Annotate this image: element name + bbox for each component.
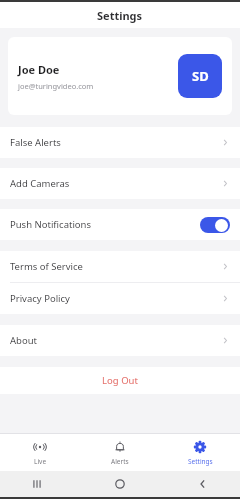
other: Recents (30, 477, 44, 491)
staticText: Alerts (111, 457, 129, 466)
staticText: SD (192, 67, 209, 85)
staticText: About (10, 334, 221, 347)
staticText: Terms of Service (10, 260, 221, 273)
other: Back (196, 477, 210, 491)
staticText: False Alerts (10, 136, 221, 149)
button[interactable]: Joe Doe (8, 37, 232, 115)
staticText: Joe Doe (18, 62, 60, 77)
button[interactable]: Log Out (0, 367, 240, 394)
button[interactable]: About (0, 325, 240, 356)
button[interactable]: False Alerts (0, 127, 240, 158)
button[interactable]: Push Notifications (0, 209, 240, 240)
other: Home (113, 477, 127, 491)
staticText: Settings (188, 457, 213, 466)
button[interactable]: Terms of Service (0, 251, 240, 282)
button[interactable]: Live (0, 434, 80, 471)
button[interactable]: Alerts (80, 434, 160, 471)
button[interactable]: Settings (160, 434, 240, 471)
button[interactable]: Add Cameras (0, 168, 240, 199)
staticText: Add Cameras (10, 177, 221, 190)
staticText: Log Out (102, 374, 138, 387)
staticText: Settings (97, 8, 143, 23)
staticText: Live (34, 457, 47, 466)
button[interactable]: Privacy Policy (0, 283, 240, 314)
staticText: joe@turingvideo.com (18, 81, 94, 91)
staticText: Push Notifications (10, 218, 200, 231)
staticText: Privacy Policy (10, 292, 221, 305)
